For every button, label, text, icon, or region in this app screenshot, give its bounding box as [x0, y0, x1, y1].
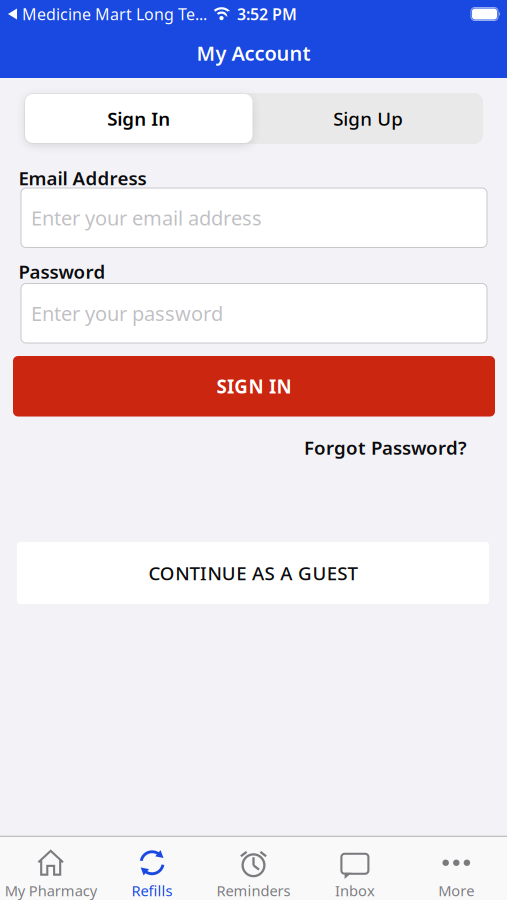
- staticText: My Pharmacy: [5, 881, 97, 900]
- staticText: Sign In: [107, 106, 170, 131]
- staticText: Sign Up: [333, 106, 403, 131]
- staticText: Forgot Password?: [304, 435, 467, 460]
- textField[interactable]: Enter your email address: [0, 188, 507, 247]
- staticText: Reminders: [216, 881, 290, 900]
- button[interactable]: My Pharmacy: [0, 848, 101, 900]
- staticText: My Account: [196, 40, 310, 66]
- button[interactable]: SIGN IN: [0, 356, 507, 416]
- button[interactable]: CONTINUE AS A GUEST: [0, 542, 507, 604]
- button[interactable]: Refills: [101, 848, 203, 900]
- button[interactable]: Sign Up: [253, 93, 483, 144]
- staticText: Password: [18, 259, 105, 284]
- button[interactable]: Reminders: [203, 848, 304, 900]
- staticText: 3:52 PM: [237, 3, 297, 25]
- staticText: Medicine Mart Long Te...: [22, 3, 207, 25]
- button[interactable]: Inbox: [304, 848, 406, 900]
- staticText: More: [438, 881, 474, 900]
- staticText: Enter your email address: [31, 204, 262, 231]
- staticText: Email Address: [18, 166, 146, 190]
- button[interactable]: Sign In: [24, 93, 253, 144]
- staticText: SIGN IN: [217, 374, 291, 399]
- staticText: Refills: [132, 881, 173, 900]
- staticText: Enter your password: [31, 300, 223, 327]
- staticText: CONTINUE AS A GUEST: [148, 561, 358, 585]
- button[interactable]: More: [406, 848, 507, 900]
- staticText: Inbox: [335, 881, 375, 900]
- textField[interactable]: Enter your password: [0, 283, 507, 343]
- button[interactable]: Forgot Password?: [304, 435, 467, 460]
- button[interactable]: Back to Medicine Mart Long Term Care: [8, 3, 207, 25]
